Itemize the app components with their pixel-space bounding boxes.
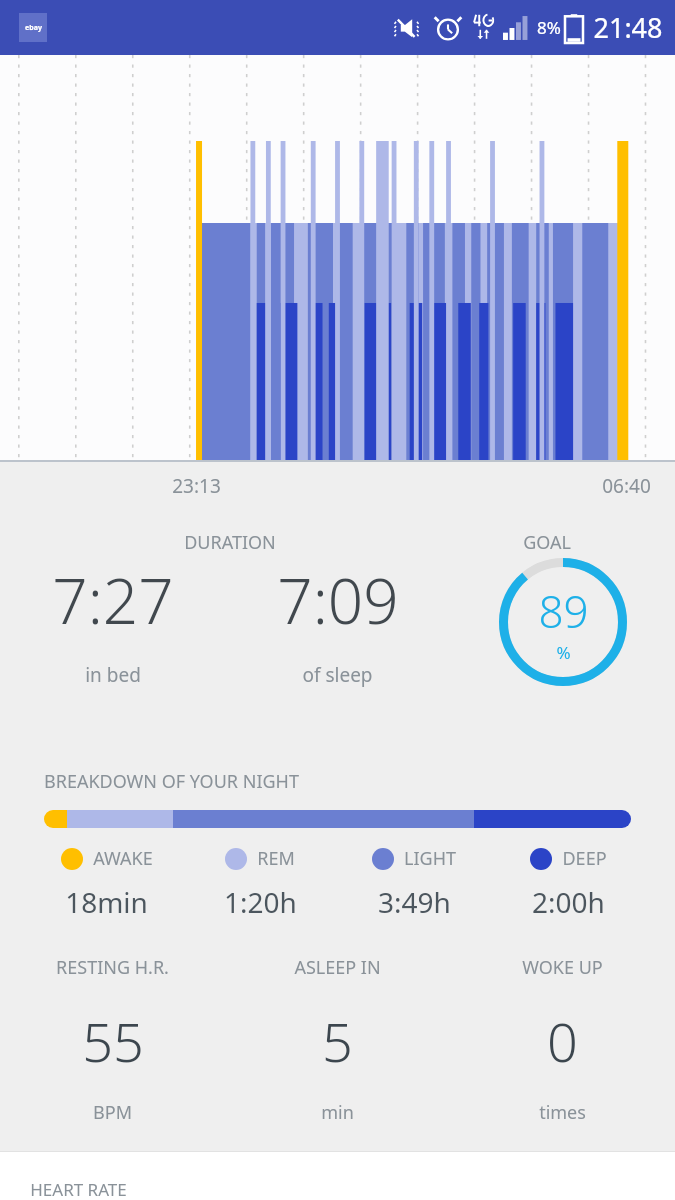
staticText: DEEP xyxy=(562,846,607,871)
staticText: ebay xyxy=(25,23,42,33)
staticText: REM xyxy=(257,846,295,871)
staticText: in bed xyxy=(85,662,141,688)
staticText: 06:40 xyxy=(602,473,651,499)
staticText: WOKE UP xyxy=(522,955,603,980)
staticText: of sleep xyxy=(302,662,373,688)
staticText: GOAL xyxy=(523,530,571,555)
staticText: 55 xyxy=(82,1004,144,1078)
staticText: 1:20h xyxy=(224,883,297,921)
button[interactable]: RESTING H.R. xyxy=(0,955,225,1125)
staticText: 2:00h xyxy=(532,883,605,921)
button[interactable]: REM xyxy=(183,846,337,921)
staticText: HEART RATE xyxy=(30,1178,127,1200)
staticText: 3:49h xyxy=(378,883,451,921)
staticText: 7:09 xyxy=(277,558,399,642)
button[interactable]: LIGHT xyxy=(337,846,491,921)
button[interactable]: AWAKE xyxy=(30,846,183,921)
staticText: min xyxy=(321,1100,354,1125)
staticText: 5 xyxy=(322,1004,353,1078)
staticText: AWAKE xyxy=(93,846,153,871)
button[interactable]: WOKE UP xyxy=(450,955,675,1125)
staticText: 89 xyxy=(538,581,589,641)
staticText: 8% xyxy=(537,16,561,39)
button[interactable]: DEEP xyxy=(491,846,645,921)
button[interactable]: 7:09 xyxy=(225,510,450,688)
staticText: 7:27 xyxy=(52,558,174,642)
staticText: LIGHT xyxy=(404,846,456,871)
staticText: DURATION xyxy=(184,530,276,555)
staticText: BPM xyxy=(93,1100,132,1125)
staticText: RESTING H.R. xyxy=(56,955,169,980)
staticText: 21:48 xyxy=(593,9,663,46)
staticText: times xyxy=(539,1100,586,1125)
staticText: ASLEEP IN xyxy=(294,955,381,980)
other: eBay notification xyxy=(19,13,47,42)
staticText: 0 xyxy=(547,1004,578,1078)
button[interactable]: ASLEEP IN xyxy=(225,955,450,1125)
button[interactable]: BREAKDOWN OF YOUR NIGHT xyxy=(0,769,675,921)
staticText: BREAKDOWN OF YOUR NIGHT xyxy=(44,769,299,794)
staticText: 23:13 xyxy=(172,473,221,499)
staticText: 18min xyxy=(65,883,148,921)
staticText: % xyxy=(556,641,571,664)
button[interactable]: 89 xyxy=(450,510,675,705)
button[interactable]: 7:27 xyxy=(0,510,225,688)
